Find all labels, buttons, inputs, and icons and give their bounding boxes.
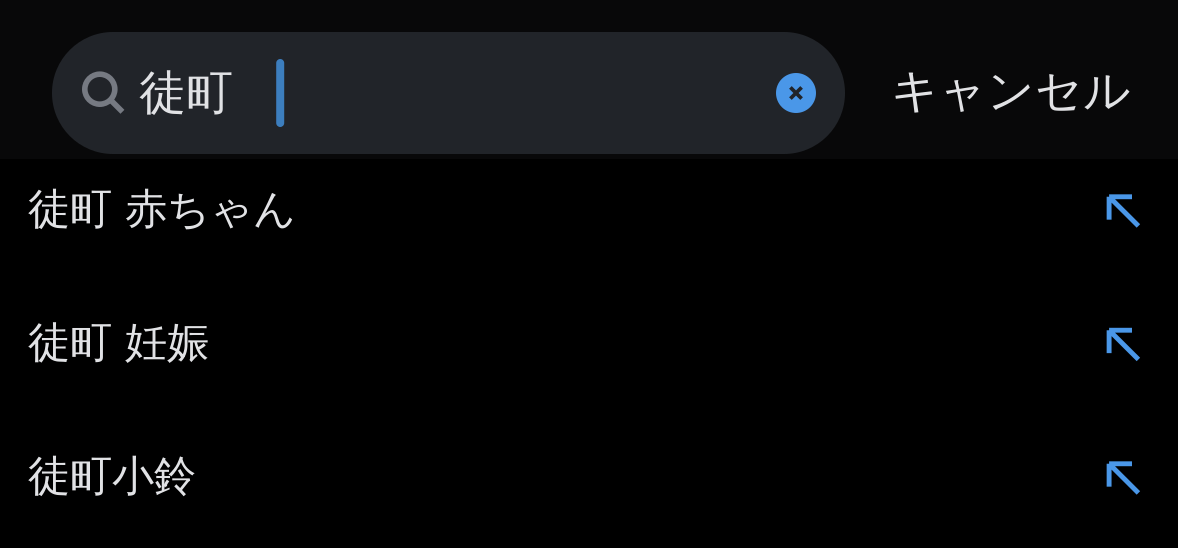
staticText: 徒町 妊娠 (28, 316, 209, 369)
staticText: 徒町 (139, 64, 233, 122)
button[interactable]: Search field (52, 32, 845, 154)
staticText: キャンセル (891, 62, 1131, 120)
staticText: 徒町 赤ちゃん (28, 183, 296, 236)
button[interactable]: 徒町 妊娠 (0, 276, 1178, 409)
staticText: 徒町小鈴 (28, 450, 196, 503)
button[interactable]: キャンセル (845, 32, 1177, 154)
button[interactable]: Clear text (765, 62, 827, 124)
button[interactable]: 徒町 赤ちゃん (0, 142, 1178, 276)
button[interactable]: 徒町小鈴 (0, 409, 1178, 543)
